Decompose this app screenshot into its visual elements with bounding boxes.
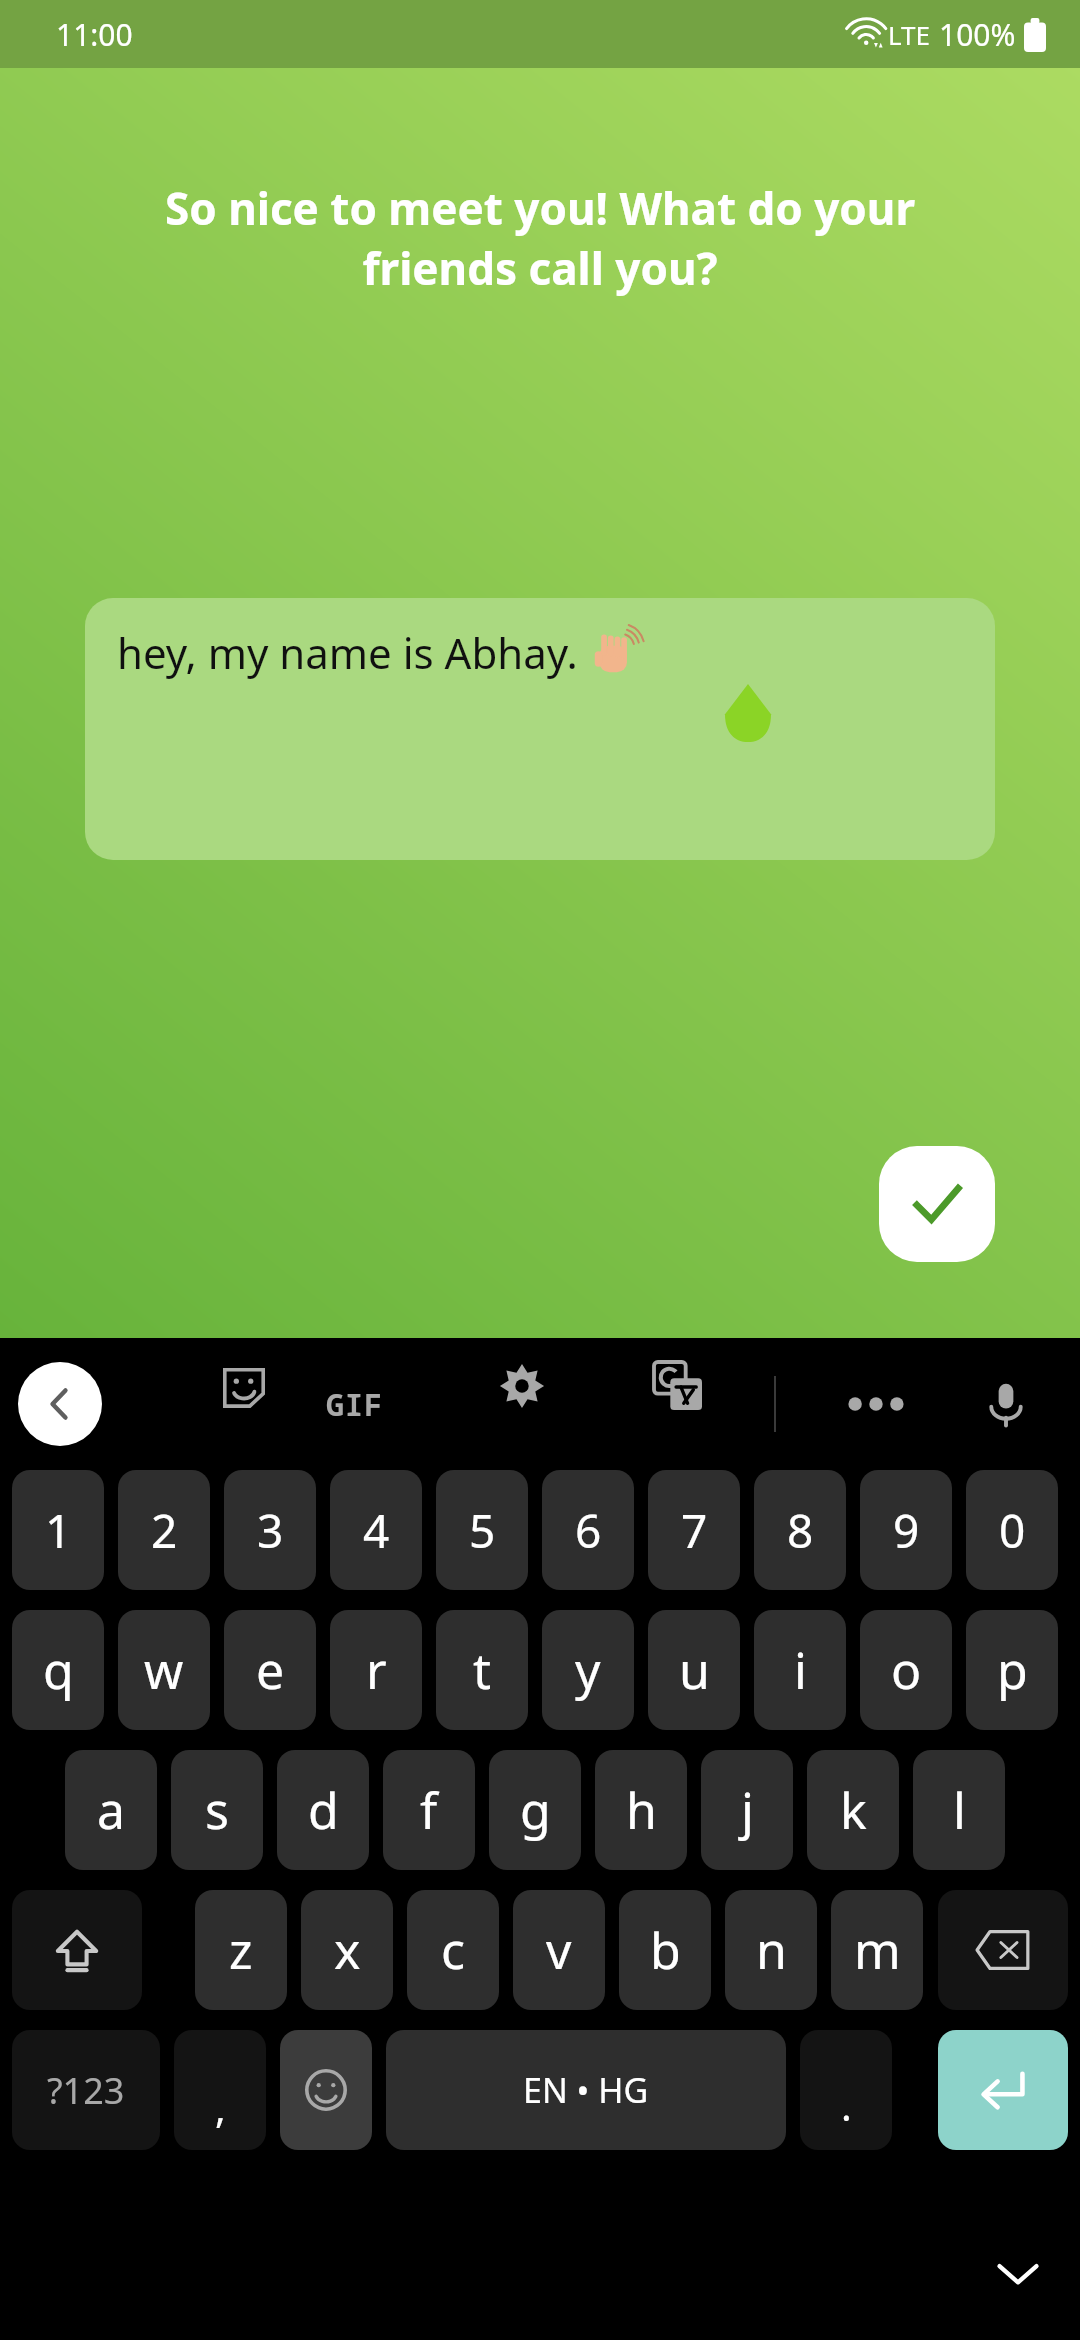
button[interactable]: z — [195, 1890, 287, 2010]
button[interactable]: c — [407, 1890, 499, 2010]
staticText: m — [854, 1916, 901, 1984]
button[interactable]: o — [860, 1610, 952, 1730]
button[interactable]: y — [542, 1610, 634, 1730]
button[interactable]: Confirm — [879, 1146, 995, 1262]
staticText: d — [308, 1776, 339, 1844]
staticText: t — [473, 1636, 492, 1704]
staticText: h — [626, 1776, 657, 1844]
staticText: LTE — [888, 17, 931, 52]
staticText: i — [794, 1636, 807, 1704]
button[interactable]: Back — [18, 1362, 102, 1446]
staticText: 4 — [363, 1499, 390, 1562]
button[interactable]: 2 — [118, 1470, 210, 1590]
button[interactable]: Emoji — [280, 2030, 372, 2150]
button[interactable]: m — [831, 1890, 923, 2010]
button[interactable]: s — [171, 1750, 263, 1870]
button[interactable]: p — [966, 1610, 1058, 1730]
staticText: q — [43, 1636, 74, 1704]
staticText: v — [546, 1916, 572, 1984]
staticText: 6 — [575, 1499, 602, 1562]
button[interactable]: 5 — [436, 1470, 528, 1590]
staticText: GIF — [326, 1384, 383, 1425]
staticText: 3 — [257, 1499, 284, 1562]
staticText: , — [215, 2080, 226, 2134]
button[interactable]: t — [436, 1610, 528, 1730]
button[interactable]: 0 — [966, 1470, 1058, 1590]
staticText: ?123 — [47, 2066, 125, 2115]
button[interactable]: EN • HG — [386, 2030, 786, 2150]
button[interactable]: f — [383, 1750, 475, 1870]
button[interactable]: Voice input — [958, 1356, 1054, 1452]
button[interactable]: l — [913, 1750, 1005, 1870]
staticText: 100% — [939, 14, 1016, 55]
staticText: n — [756, 1916, 787, 1984]
button[interactable]: d — [277, 1750, 369, 1870]
staticText: . — [841, 2078, 852, 2132]
button[interactable]: Hide keyboard — [978, 2234, 1058, 2314]
button[interactable]: 6 — [542, 1470, 634, 1590]
button[interactable]: x — [301, 1890, 393, 2010]
staticText: z — [229, 1916, 253, 1984]
button[interactable]: Keyboard tool — [630, 1338, 726, 1434]
button[interactable]: h — [595, 1750, 687, 1870]
staticText: l — [953, 1776, 966, 1844]
button[interactable]: ?123 — [12, 2030, 160, 2150]
staticText: 1 — [45, 1499, 72, 1562]
button[interactable]: n — [725, 1890, 817, 2010]
staticText: x — [334, 1916, 361, 1984]
staticText: 9 — [893, 1499, 920, 1562]
staticText: u — [679, 1636, 710, 1704]
staticText: b — [650, 1916, 681, 1984]
button[interactable]: k — [807, 1750, 899, 1870]
staticText: c — [441, 1916, 465, 1984]
staticText: 11:00 — [56, 14, 133, 55]
button[interactable]: v — [513, 1890, 605, 2010]
staticText: So nice to meet you! What do your friend… — [110, 178, 970, 298]
staticText: 2 — [151, 1499, 178, 1562]
button[interactable]: . — [800, 2030, 892, 2150]
staticText: s — [205, 1776, 229, 1844]
button[interactable]: 3 — [224, 1470, 316, 1590]
staticText: o — [891, 1636, 922, 1704]
staticText: y — [575, 1636, 601, 1704]
button[interactable]: 8 — [754, 1470, 846, 1590]
staticText: e — [256, 1636, 285, 1704]
staticText: a — [97, 1776, 126, 1844]
button[interactable]: Shift — [12, 1890, 142, 2010]
button[interactable]: hey, my name is Abhay. — [85, 598, 995, 860]
button[interactable]: GIF — [306, 1356, 402, 1452]
button[interactable]: 1 — [12, 1470, 104, 1590]
button[interactable]: 7 — [648, 1470, 740, 1590]
button[interactable]: r — [330, 1610, 422, 1730]
button[interactable]: w — [118, 1610, 210, 1730]
button[interactable]: 9 — [860, 1470, 952, 1590]
button[interactable]: 4 — [330, 1470, 422, 1590]
staticText: r — [366, 1636, 387, 1704]
button[interactable]: Keyboard tool — [474, 1338, 570, 1434]
button[interactable]: a — [65, 1750, 157, 1870]
button[interactable]: e — [224, 1610, 316, 1730]
button[interactable]: More options — [828, 1356, 924, 1452]
staticText: 7 — [681, 1499, 708, 1562]
staticText: g — [520, 1776, 551, 1844]
staticText: hey, my name is Abhay. — [117, 624, 578, 681]
button[interactable]: Keyboard tool — [196, 1338, 292, 1434]
button[interactable]: u — [648, 1610, 740, 1730]
staticText: 5 — [469, 1499, 496, 1562]
staticText: k — [840, 1776, 867, 1844]
button[interactable]: Enter — [938, 2030, 1068, 2150]
staticText: w — [144, 1636, 184, 1704]
staticText: 0 — [999, 1499, 1026, 1562]
staticText: 8 — [787, 1499, 814, 1562]
button[interactable]: b — [619, 1890, 711, 2010]
staticText: p — [997, 1636, 1028, 1704]
staticText: EN • HG — [523, 2067, 649, 2113]
button[interactable]: i — [754, 1610, 846, 1730]
staticText: f — [420, 1776, 438, 1844]
button[interactable]: q — [12, 1610, 104, 1730]
button[interactable]: Backspace — [938, 1890, 1068, 2010]
button[interactable]: g — [489, 1750, 581, 1870]
button[interactable]: , — [174, 2030, 266, 2150]
staticText: j — [741, 1776, 754, 1844]
button[interactable]: j — [701, 1750, 793, 1870]
